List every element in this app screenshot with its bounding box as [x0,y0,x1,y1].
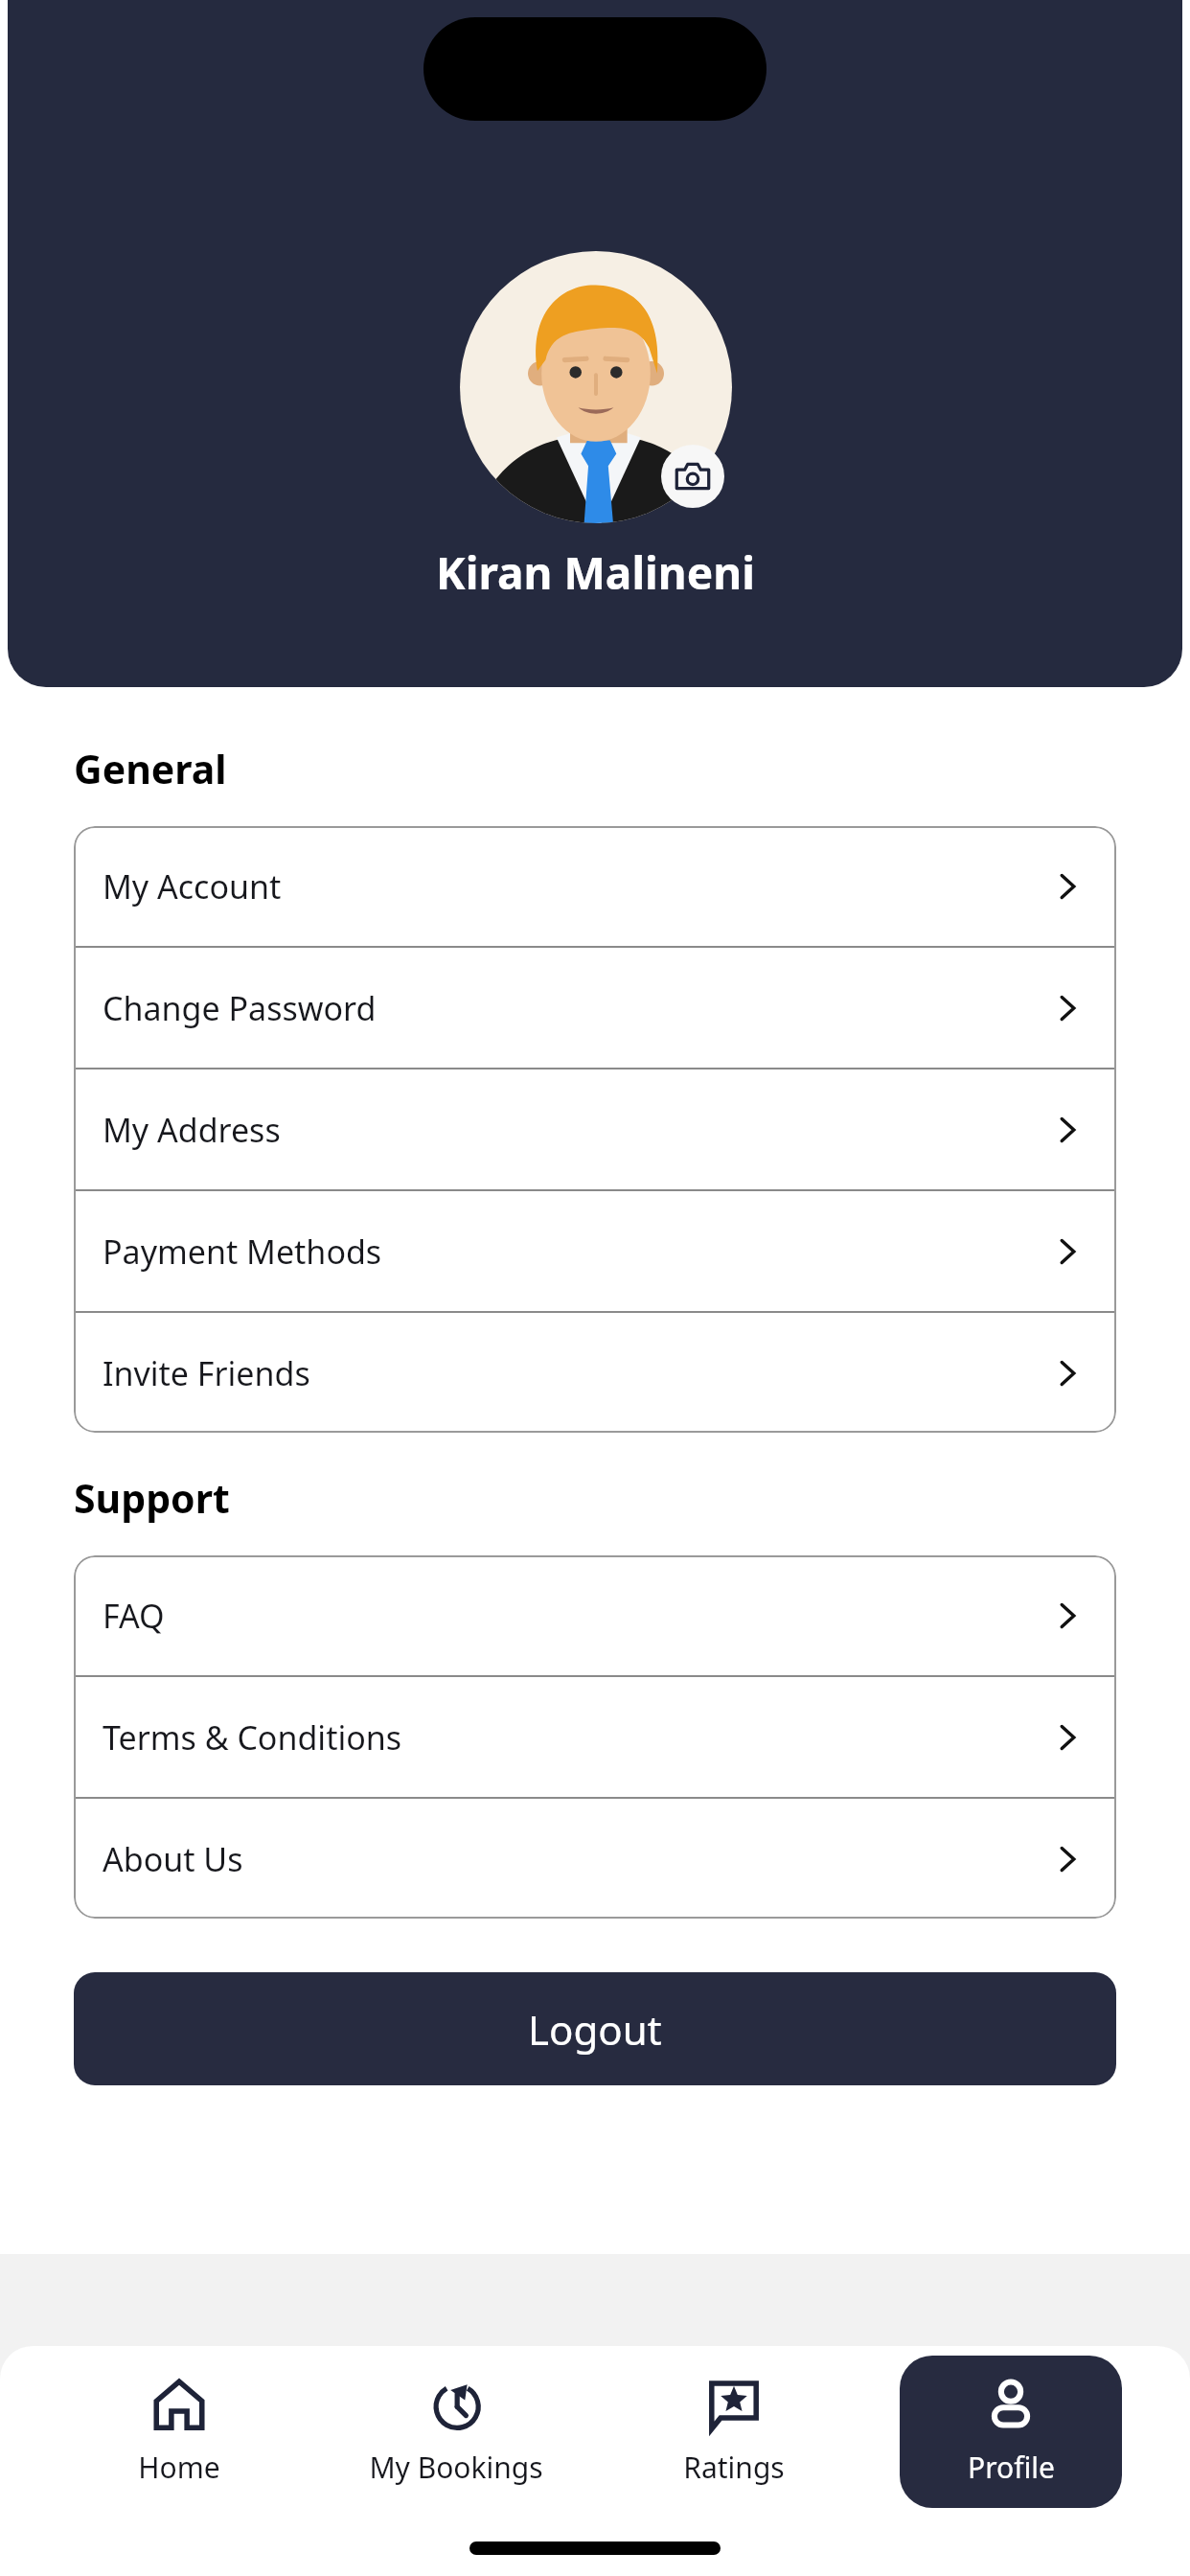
button[interactable]: My Bookings [345,2356,567,2508]
button[interactable]: Change Password [74,948,1116,1068]
staticText: Terms & Conditions [103,1715,1051,1759]
button[interactable]: Profile [900,2356,1122,2508]
button[interactable]: Ratings [623,2356,845,2508]
button[interactable]: Logout [74,1972,1116,2085]
staticText: Kiran Malineni [436,542,755,603]
staticText: FAQ [103,1594,1051,1638]
button[interactable]: Home [68,2356,290,2508]
staticText: My Account [103,864,1051,908]
button[interactable]: Invite Friends [74,1313,1116,1433]
staticText: General [74,742,227,795]
staticText: My Bookings [369,2448,543,2487]
other: Profile [983,2377,1039,2432]
staticText: Home [138,2448,220,2487]
staticText: Support [74,1471,230,1525]
staticText: Payment Methods [103,1230,1051,1274]
other: Home [151,2377,207,2432]
button[interactable]: Payment Methods [74,1191,1116,1311]
staticText: Profile [968,2448,1055,2487]
staticText: Ratings [683,2448,785,2487]
button[interactable]: FAQ [74,1555,1116,1675]
button[interactable]: My Address [74,1069,1116,1189]
staticText: Invite Friends [103,1351,1051,1395]
button[interactable]: My Account [74,826,1116,946]
staticText: About Us [103,1837,1051,1881]
other: Ratings [706,2377,762,2432]
button[interactable]: About Us [74,1799,1116,1919]
button[interactable]: Terms & Conditions [74,1677,1116,1797]
staticText: Logout [528,2002,662,2057]
button[interactable]: Change profile photo [661,445,724,508]
staticText: My Address [103,1108,1051,1152]
staticText: Change Password [103,986,1051,1030]
other: My Bookings [428,2377,484,2432]
